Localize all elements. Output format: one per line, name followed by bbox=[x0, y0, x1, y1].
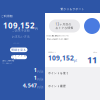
staticText: 繋がりをサポート bbox=[60, 7, 84, 11]
button[interactable]: ポイントを使う bbox=[45, 66, 100, 79]
staticText: お知らせ bbox=[93, 51, 97, 53]
staticText: 11 bbox=[87, 53, 97, 66]
staticText: 明細を見る bbox=[11, 48, 26, 51]
staticText: 4,547 bbox=[23, 82, 37, 89]
staticText: 109,152 bbox=[3, 20, 35, 31]
button[interactable]: ポイント履歴 bbox=[45, 79, 100, 92]
staticText: ご利用額 bbox=[1, 14, 13, 18]
button[interactable]: ポイントを使う bbox=[11, 55, 27, 59]
staticText: お客さま／ご利用中の料金 bbox=[2, 60, 14, 62]
staticText: 1 bbox=[34, 74, 37, 81]
staticText: ポイントを使う bbox=[11, 54, 26, 60]
staticText: ポイント履歴 bbox=[48, 84, 66, 88]
staticText: 利用可能ポイント bbox=[48, 51, 56, 53]
staticText: 13ヶ月目の おトクな情報 bbox=[55, 23, 73, 29]
staticText: お支払い状況 bbox=[13, 42, 19, 44]
staticText: お支払い方法 bbox=[12, 35, 30, 38]
staticText: pt bbox=[74, 59, 77, 62]
staticText: 109,152 bbox=[48, 53, 74, 62]
staticText: 1 bbox=[34, 66, 37, 74]
staticText: 円 bbox=[35, 27, 38, 31]
staticText: 円/月 bbox=[37, 70, 44, 73]
staticText: ポイントを使う bbox=[48, 71, 69, 75]
staticText: 日ごろのご愛顧に感謝を込めてソフトバンクから bbox=[46, 35, 68, 37]
staticText: ご請求予定額 bbox=[12, 29, 30, 32]
staticText: 円/月 bbox=[37, 78, 44, 81]
staticText: プラン・各種サービス bbox=[2, 62, 12, 64]
staticText: 円/月 bbox=[37, 85, 44, 89]
staticText: 大切なおしらせをお届けしています。ご確認くだ bbox=[46, 38, 68, 40]
button[interactable]: 明細を見る bbox=[10, 47, 27, 52]
